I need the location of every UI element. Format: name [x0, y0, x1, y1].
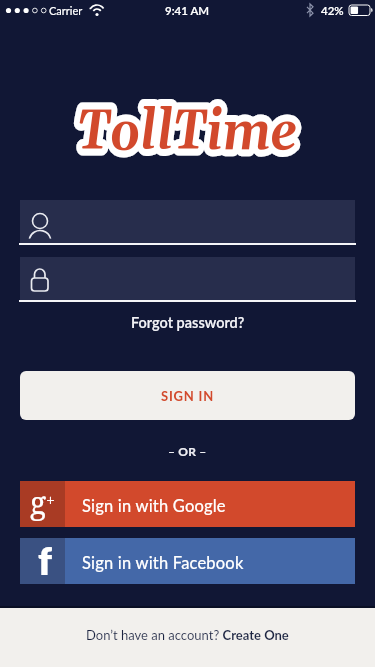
staticText: f [38, 537, 52, 583]
button[interactable]: Forgot password? [131, 314, 245, 331]
button[interactable] [20, 257, 355, 302]
button[interactable]: SIGN IN [20, 371, 355, 420]
staticText: Sign in with Facebook [82, 553, 244, 573]
staticText: g [30, 482, 47, 523]
button[interactable]: g [20, 481, 355, 527]
staticText: Carrier [49, 4, 83, 17]
staticText: TollTime [77, 96, 297, 168]
staticText: 9:41 AM [165, 4, 210, 18]
staticText: – OR – [168, 444, 207, 458]
button[interactable]: Don’t have an account? Create One [0, 608, 375, 667]
staticText: Don’t have an account? Create One [86, 627, 289, 643]
staticText: 42% [321, 4, 344, 18]
staticText: TollTime [77, 96, 297, 168]
staticText: + [46, 489, 55, 511]
staticText: SIGN IN [161, 388, 215, 404]
button[interactable]: f [20, 538, 355, 584]
button[interactable] [20, 200, 355, 245]
staticText: Sign in with Google [82, 496, 226, 516]
